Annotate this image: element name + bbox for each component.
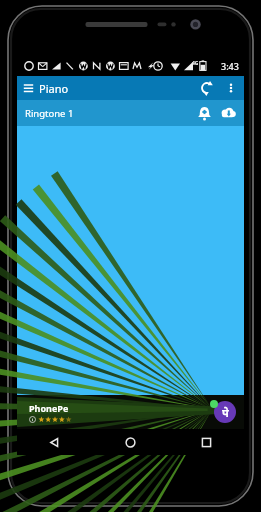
button[interactable]: Refresh <box>194 76 220 100</box>
button[interactable]: Back <box>17 429 92 455</box>
button[interactable]: Download <box>216 101 240 125</box>
staticText: PhonePe <box>29 402 69 414</box>
button[interactable]: Home <box>92 429 168 455</box>
staticText: Piano <box>39 81 69 96</box>
button[interactable]: Ringtone 1 <box>17 100 244 126</box>
button[interactable]: Open navigation drawer <box>17 77 39 99</box>
button[interactable]: PhonePe advertisement <box>17 395 244 429</box>
button[interactable]: Set as ringtone <box>192 101 216 125</box>
staticText: Ringtone 1 <box>25 107 74 120</box>
button[interactable]: More options <box>220 77 242 99</box>
staticText: 4G <box>192 60 199 67</box>
staticText: पे <box>222 405 229 420</box>
staticText: 3:43 <box>221 60 239 72</box>
button[interactable]: Recent apps <box>168 429 244 455</box>
